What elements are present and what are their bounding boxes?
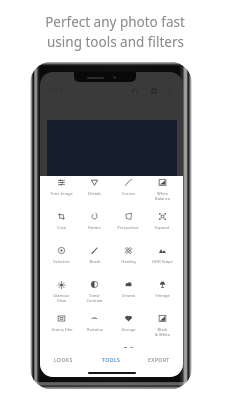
staticText: Tonal Contrast: [86, 293, 103, 303]
button[interactable]: Black & White: [145, 312, 179, 346]
button[interactable]: Curves: [111, 176, 145, 210]
staticText: Perspective: [117, 225, 139, 230]
staticText: HDR Scape: [152, 259, 173, 264]
staticText: Selective: [53, 259, 70, 264]
staticText: EXPORT: [148, 356, 170, 363]
button[interactable]: Healing: [111, 244, 145, 278]
button[interactable]: Drama: [111, 278, 145, 312]
staticText: Crop: [57, 225, 66, 230]
button[interactable]: Crop: [45, 210, 78, 244]
staticText: Curves: [122, 191, 135, 196]
staticText: Expand: [155, 225, 169, 230]
staticText: Glamour Glow: [53, 293, 70, 303]
staticText: Rotate: [88, 225, 101, 230]
button[interactable]: Tune Image: [45, 176, 78, 210]
button[interactable]: Brush: [78, 244, 111, 278]
button[interactable]: Selective: [45, 244, 78, 278]
button[interactable]: Retrolux: [78, 312, 111, 346]
button[interactable]: White Balance: [145, 176, 179, 210]
button[interactable]: Vintage: [145, 278, 179, 312]
button[interactable]: Expand: [145, 210, 179, 244]
staticText: Retrolux: [87, 327, 103, 332]
staticText: Grainy Film: [51, 327, 73, 332]
button[interactable]: Grunge: [111, 312, 145, 346]
button[interactable]: Perspective: [111, 210, 145, 244]
staticText: using tools and filters: [47, 33, 184, 51]
staticText: Tune Image: [50, 191, 73, 196]
staticText: Brush: [89, 259, 101, 264]
button[interactable]: LOOKS: [40, 352, 87, 366]
button[interactable]: Glamour Glow: [45, 278, 78, 312]
staticText: White Balance: [155, 191, 170, 201]
staticText: LOOKS: [54, 356, 73, 363]
staticText: Vintage: [155, 293, 170, 298]
staticText: Black & White: [155, 327, 170, 337]
button[interactable]: Grainy Film: [45, 312, 78, 346]
button[interactable]: EXPORT: [135, 352, 183, 366]
staticText: Perfect any photo fast: [45, 13, 185, 31]
staticText: TOOLS: [102, 356, 121, 363]
button[interactable]: HDR Scape: [145, 244, 179, 278]
staticText: Grunge: [121, 327, 136, 332]
button[interactable]: Tonal Contrast: [78, 278, 111, 312]
staticText: Details: [88, 191, 101, 196]
staticText: Healing: [121, 259, 136, 264]
button[interactable]: Details: [78, 176, 111, 210]
button[interactable]: Compare: [147, 84, 161, 98]
button[interactable]: TOOLS: [87, 352, 135, 366]
staticText: Drama: [122, 293, 135, 298]
button[interactable]: Rotate: [78, 210, 111, 244]
